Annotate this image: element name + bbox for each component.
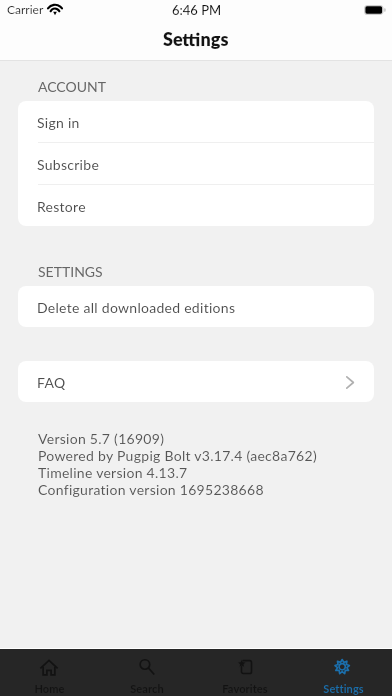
staticText: Version 5.7 (16909) — [38, 430, 165, 447]
button[interactable]: Sign in — [18, 101, 374, 142]
button[interactable]: Restore — [18, 185, 374, 226]
staticText: Powered by Pugpig Bolt v3.17.4 (aec8a762… — [38, 447, 317, 464]
staticText: Delete all downloaded editions — [37, 299, 236, 316]
other: Battery — [364, 5, 386, 15]
staticText: ACCOUNT — [38, 78, 106, 95]
staticText: Subscribe — [37, 156, 100, 173]
staticText: Carrier — [7, 2, 44, 16]
staticText: Search — [130, 682, 164, 695]
button[interactable]: Settings — [294, 649, 392, 696]
staticText: Favorites — [222, 682, 268, 695]
button[interactable]: Search — [98, 649, 196, 696]
staticText: FAQ — [37, 374, 66, 391]
button[interactable]: Favorites — [196, 649, 294, 696]
button[interactable]: Home — [0, 649, 98, 696]
staticText: Settings — [323, 682, 364, 695]
staticText: Timeline version 4.13.7 — [38, 464, 188, 481]
button[interactable]: Delete all downloaded editions — [18, 286, 374, 327]
button[interactable]: FAQ — [18, 361, 374, 402]
other: Wi-Fi — [48, 4, 62, 15]
staticText: Configuration version 1695238668 — [38, 481, 264, 498]
staticText: Restore — [37, 198, 86, 215]
staticText: Settings — [163, 28, 229, 50]
button[interactable]: Subscribe — [18, 143, 374, 184]
staticText: Sign in — [37, 114, 80, 131]
staticText: 6:46 PM — [172, 2, 222, 18]
staticText: SETTINGS — [38, 263, 103, 280]
staticText: Home — [34, 682, 65, 695]
